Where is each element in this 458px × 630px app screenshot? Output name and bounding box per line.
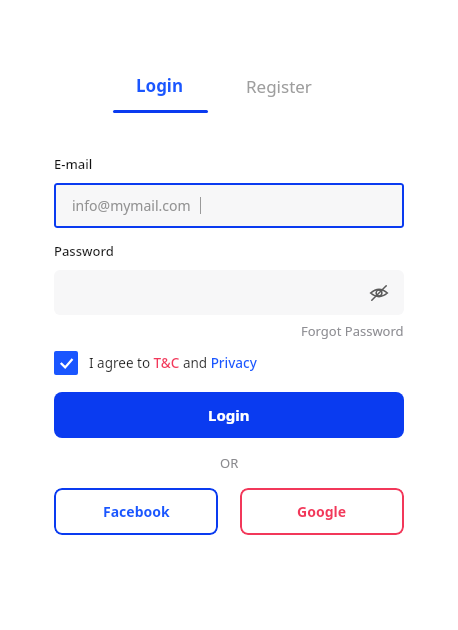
- button[interactable]: Facebook: [54, 488, 218, 535]
- staticText: OR: [220, 454, 239, 472]
- button[interactable]: Register: [246, 74, 312, 98]
- staticText: E-mail: [54, 155, 93, 173]
- staticText: Google: [297, 502, 347, 521]
- button[interactable]: info@mymail.com: [54, 183, 404, 228]
- button[interactable]: Google: [240, 488, 404, 535]
- button[interactable]: Show password: [54, 270, 404, 315]
- staticText: Facebook: [103, 502, 170, 521]
- staticText: Password: [54, 242, 114, 260]
- staticText: Forgot Password: [301, 322, 404, 340]
- button[interactable]: Forgot Password: [301, 322, 404, 340]
- staticText: I agree to T&C and Privacy: [89, 354, 257, 372]
- button[interactable]: Login: [111, 74, 209, 113]
- staticText: Login: [136, 74, 184, 97]
- staticText: Login: [208, 405, 250, 425]
- button[interactable]: Login: [54, 392, 404, 438]
- staticText: Register: [246, 75, 312, 98]
- staticText: info@mymail.com: [72, 196, 191, 215]
- button[interactable]: Show password: [366, 280, 392, 306]
- button[interactable]: I agree to T&C and Privacy: [54, 351, 257, 375]
